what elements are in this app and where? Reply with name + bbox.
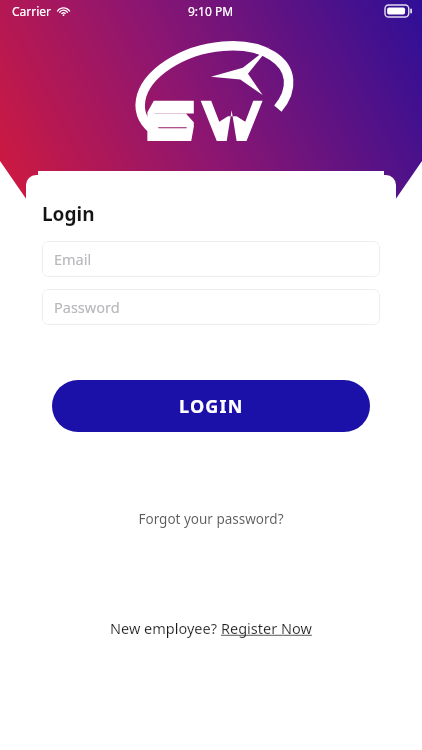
staticText: Email bbox=[54, 249, 92, 269]
staticText: Register Now bbox=[221, 618, 312, 638]
button[interactable]: Forgot your password? bbox=[126, 504, 296, 534]
button[interactable]: Register Now bbox=[221, 618, 312, 638]
staticText: 9:10 PM bbox=[188, 3, 234, 19]
button[interactable]: Email bbox=[42, 241, 380, 277]
staticText: Login bbox=[42, 201, 95, 227]
staticText: Password bbox=[54, 297, 120, 317]
button[interactable]: LOGIN bbox=[52, 380, 370, 432]
staticText: New employee? bbox=[110, 618, 221, 638]
staticText: LOGIN bbox=[179, 394, 244, 419]
staticText: Carrier bbox=[12, 3, 52, 19]
staticText: Forgot your password? bbox=[138, 510, 284, 528]
button[interactable]: Password bbox=[42, 289, 380, 325]
